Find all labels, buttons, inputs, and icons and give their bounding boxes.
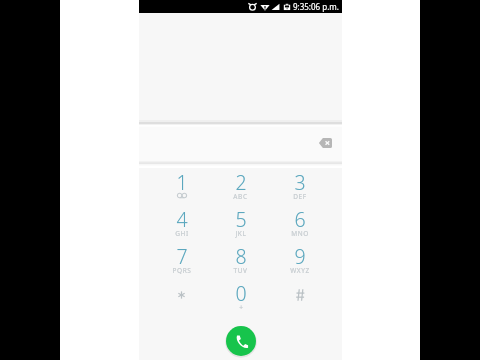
staticText: 5 — [235, 206, 247, 233]
button[interactable]: 2 — [211, 167, 270, 204]
staticText: + — [239, 303, 244, 312]
staticText: 9:35:06 p.m. — [293, 1, 339, 12]
staticText: JKL — [235, 229, 247, 238]
staticText: 1 — [176, 169, 188, 196]
staticText: 2 — [235, 169, 247, 196]
staticText: 3 — [294, 169, 306, 196]
button[interactable]: 8 — [211, 241, 270, 278]
staticText: 0 — [235, 280, 247, 307]
staticText: 6 — [294, 206, 306, 233]
button[interactable]: 7 — [152, 241, 211, 278]
button[interactable]: 4 — [152, 204, 211, 241]
staticText: 7 — [176, 243, 188, 270]
button[interactable]: 0 — [211, 278, 270, 315]
staticText: 9 — [294, 243, 306, 270]
button[interactable]: Call — [225, 325, 257, 357]
staticText: WXYZ — [290, 266, 310, 275]
staticText: 4 — [176, 206, 188, 233]
staticText: DEF — [293, 192, 307, 201]
button[interactable]: 1 — [152, 167, 211, 204]
staticText: MNO — [291, 229, 309, 238]
button[interactable]: 6 — [270, 204, 329, 241]
button[interactable]: 9 — [270, 241, 329, 278]
button[interactable]: 5 — [211, 204, 270, 241]
staticText: 8 — [235, 243, 247, 270]
staticText: PQRS — [172, 266, 192, 275]
button[interactable]: 3 — [270, 167, 329, 204]
staticText: TUV — [233, 266, 248, 275]
button[interactable]: Backspace — [314, 132, 336, 154]
button[interactable]: star — [152, 278, 211, 315]
staticText: GHI — [175, 229, 189, 238]
button[interactable]: pound — [270, 278, 329, 315]
staticText: ABC — [233, 192, 248, 201]
